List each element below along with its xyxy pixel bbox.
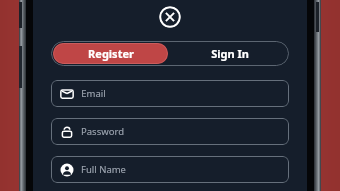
staticText: Email <box>81 87 106 100</box>
staticText: Full Name <box>81 163 126 176</box>
button[interactable]: Full Name <box>51 156 289 183</box>
staticText: Register <box>88 46 134 61</box>
button[interactable]: Password <box>51 118 289 145</box>
staticText: Password <box>81 125 124 138</box>
button[interactable]: Email <box>51 80 289 107</box>
button[interactable]: Close <box>159 6 181 28</box>
staticText: Sign In <box>211 46 249 61</box>
button[interactable]: Register <box>53 43 168 64</box>
button[interactable]: Sign In <box>170 41 289 66</box>
